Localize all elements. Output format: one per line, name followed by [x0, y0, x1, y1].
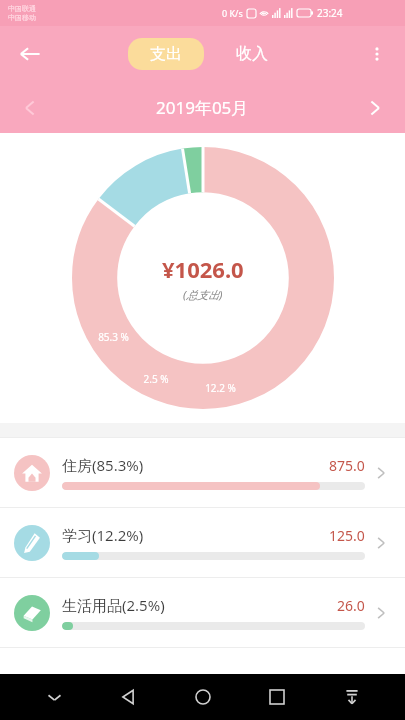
- staticText: 住房(85.3%): [62, 455, 144, 475]
- staticText: (总支出): [183, 287, 223, 302]
- staticText: 26.0: [337, 596, 365, 615]
- button[interactable]: Hide: [33, 676, 75, 718]
- staticText: 中国联通: [8, 4, 36, 13]
- staticText: 中国移动: [8, 13, 36, 22]
- button[interactable]: Back: [107, 676, 149, 718]
- button[interactable]: 收入: [226, 38, 278, 70]
- staticText: 875.0: [329, 456, 365, 475]
- button[interactable]: Previous month: [8, 86, 52, 130]
- staticText: 学习(12.2%): [62, 525, 144, 545]
- button[interactable]: Back: [6, 30, 54, 78]
- button[interactable]: Recents: [256, 676, 298, 718]
- staticText: ¥1026.0: [162, 254, 244, 284]
- staticText: 2019年05月: [156, 96, 249, 119]
- button[interactable]: 住房(85.3%): [0, 438, 405, 507]
- button[interactable]: 学习(12.2%): [0, 508, 405, 577]
- button[interactable]: Next month: [353, 86, 397, 130]
- button[interactable]: More options: [355, 32, 399, 76]
- staticText: 85.3 %: [98, 330, 129, 344]
- button[interactable]: 生活用品(2.5%): [0, 578, 405, 647]
- staticText: 125.0: [329, 526, 365, 545]
- button[interactable]: 支出: [128, 38, 204, 70]
- button[interactable]: Home: [182, 676, 224, 718]
- staticText: 2.5 %: [143, 372, 169, 386]
- staticText: 生活用品(2.5%): [62, 595, 165, 615]
- staticText: 支出: [150, 44, 182, 64]
- staticText: 12.2 %: [205, 381, 236, 395]
- staticText: 23:24: [317, 6, 343, 20]
- staticText: 0 K/s: [222, 7, 243, 19]
- button[interactable]: Download: [331, 676, 373, 718]
- staticText: 收入: [236, 44, 268, 64]
